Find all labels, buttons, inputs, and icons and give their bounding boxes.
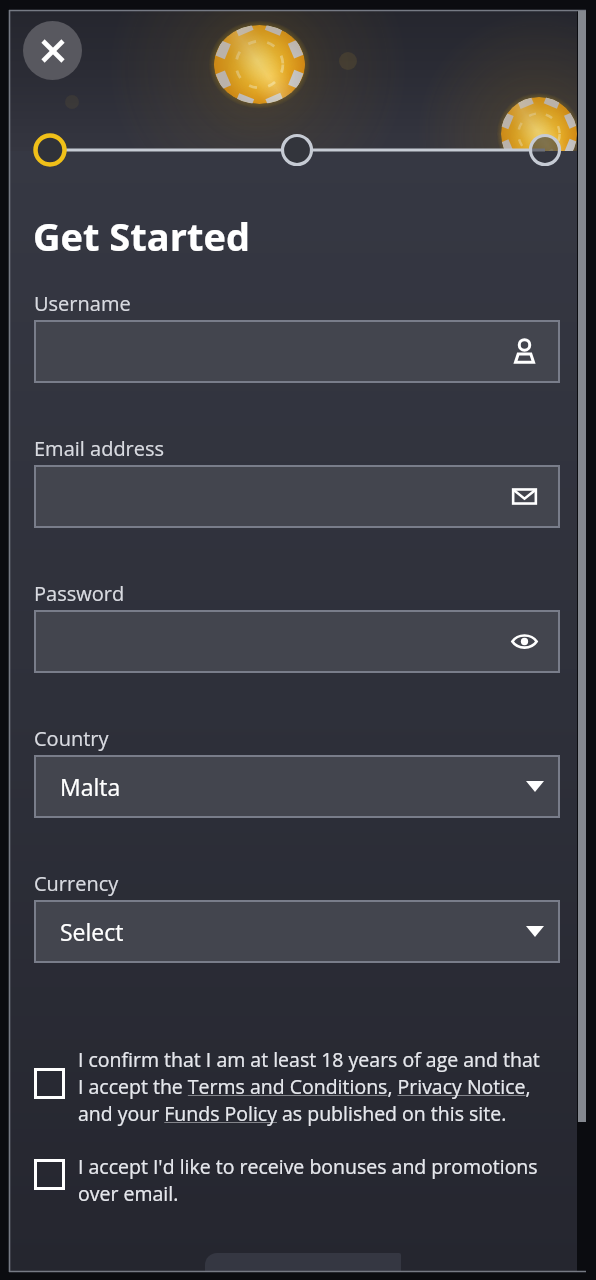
button[interactable]: Continue [205,1253,401,1271]
button[interactable] [34,320,560,383]
button[interactable] [34,465,560,528]
staticText: Get Started [33,210,250,262]
staticText: Malta [60,771,121,802]
button[interactable]: Checkbox [34,1068,65,1099]
button[interactable]: Select [34,900,560,963]
button[interactable]: Malta [34,755,560,818]
staticText: Password [34,580,125,607]
staticText: Email address [34,435,165,462]
staticText: Currency [34,870,119,897]
staticText: Select [60,916,124,947]
button[interactable]: Checkbox [34,1153,569,1207]
button[interactable]: Close [23,21,82,80]
button[interactable]: Checkbox [34,1046,569,1127]
staticText: Country [34,725,109,752]
staticText: I accept I'd like to receive bonuses and… [78,1153,546,1207]
staticText: Username [34,290,131,317]
button[interactable]: Checkbox [34,1159,65,1190]
button[interactable] [34,610,560,673]
staticText: I confirm that I am at least 18 years of… [78,1046,546,1127]
